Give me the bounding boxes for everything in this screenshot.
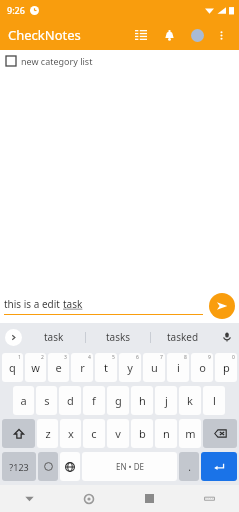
- staticText: s: [44, 393, 50, 408]
- staticText: l: [213, 393, 216, 408]
- staticText: this is a edit: [4, 297, 63, 311]
- button[interactable]: EN • DE: [82, 452, 177, 481]
- staticText: tasks: [106, 330, 131, 344]
- staticText: o: [199, 360, 206, 375]
- button[interactable]: Send: [209, 293, 235, 319]
- staticText: tasked: [167, 330, 199, 344]
- button[interactable]: c: [83, 419, 105, 448]
- button[interactable]: .: [179, 452, 199, 481]
- staticText: 7: [160, 354, 163, 361]
- staticText: x: [68, 426, 74, 441]
- staticText: n: [163, 426, 170, 441]
- staticText: 1: [18, 354, 21, 361]
- button[interactable]: tasked: [151, 323, 215, 351]
- staticText: t: [104, 360, 108, 375]
- staticText: a: [20, 393, 27, 408]
- button[interactable]: r: [71, 353, 93, 382]
- button[interactable]: v: [107, 419, 129, 448]
- staticText: d: [67, 393, 74, 408]
- staticText: h: [139, 393, 146, 408]
- button[interactable]: Expand toolbar: [5, 329, 22, 346]
- button[interactable]: Account: [185, 23, 209, 47]
- button[interactable]: n: [155, 419, 177, 448]
- button[interactable]: w: [25, 353, 46, 382]
- button[interactable]: Hide keyboard: [0, 485, 59, 512]
- staticText: g: [115, 393, 122, 408]
- button[interactable]: tasks: [86, 323, 150, 351]
- staticText: new category list: [21, 55, 93, 67]
- staticText: w: [31, 360, 40, 375]
- button[interactable]: t: [95, 353, 117, 382]
- button[interactable]: Emoji: [38, 452, 58, 481]
- button[interactable]: Recent apps: [119, 485, 179, 512]
- staticText: 6: [136, 354, 139, 361]
- button[interactable]: m: [179, 419, 201, 448]
- button[interactable]: Enter: [201, 452, 237, 481]
- staticText: f: [92, 393, 96, 408]
- staticText: EN • DE: [116, 461, 144, 472]
- staticText: 9: [208, 354, 211, 361]
- staticText: u: [151, 360, 158, 375]
- button[interactable]: z: [37, 419, 58, 448]
- button[interactable]: new category list: [0, 50, 239, 72]
- button[interactable]: Switch keyboard: [179, 485, 239, 512]
- button[interactable]: g: [107, 386, 129, 415]
- staticText: m: [185, 426, 196, 441]
- button[interactable]: Change language: [60, 452, 80, 481]
- staticText: z: [45, 426, 51, 441]
- button[interactable]: j: [155, 386, 177, 415]
- staticText: task: [44, 330, 64, 344]
- button[interactable]: u: [143, 353, 165, 382]
- button[interactable]: k: [179, 386, 201, 415]
- staticText: 0: [232, 354, 235, 361]
- staticText: c: [91, 426, 97, 441]
- button[interactable]: x: [60, 419, 81, 448]
- button[interactable]: h: [131, 386, 153, 415]
- staticText: j: [165, 393, 168, 408]
- staticText: r: [80, 360, 85, 375]
- staticText: .: [188, 460, 191, 474]
- button[interactable]: i: [167, 353, 189, 382]
- button[interactable]: More options: [211, 25, 231, 45]
- button[interactable]: p: [215, 353, 237, 382]
- staticText: ?123: [9, 461, 29, 473]
- button[interactable]: s: [36, 386, 57, 415]
- staticText: task: [63, 297, 83, 311]
- button[interactable]: Home: [59, 485, 119, 512]
- staticText: p: [223, 360, 230, 375]
- button[interactable]: Shift: [2, 419, 35, 448]
- button[interactable]: y: [119, 353, 141, 382]
- staticText: y: [127, 360, 133, 375]
- staticText: k: [187, 393, 193, 408]
- button[interactable]: l: [203, 386, 225, 415]
- staticText: b: [139, 426, 146, 441]
- button[interactable]: e: [48, 353, 69, 382]
- button[interactable]: b: [131, 419, 153, 448]
- staticText: e: [55, 360, 62, 375]
- button[interactable]: f: [83, 386, 105, 415]
- staticText: 2: [41, 354, 44, 361]
- staticText: v: [115, 426, 121, 441]
- button[interactable]: Lists: [129, 23, 153, 47]
- staticText: 8: [184, 354, 187, 361]
- staticText: 4: [88, 354, 91, 361]
- button[interactable]: ?123: [2, 452, 36, 481]
- button[interactable]: Voice input: [215, 323, 239, 351]
- button[interactable]: q: [2, 353, 23, 382]
- staticText: 5: [112, 354, 115, 361]
- staticText: 3: [64, 354, 67, 361]
- button[interactable]: d: [59, 386, 81, 415]
- staticText: CheckNotes: [8, 26, 81, 44]
- button[interactable]: Notifications: [157, 23, 181, 47]
- staticText: q: [9, 360, 16, 375]
- staticText: 9:26: [7, 4, 25, 16]
- staticText: i: [177, 360, 180, 375]
- button[interactable]: a: [13, 386, 34, 415]
- button[interactable]: Backspace: [203, 419, 237, 448]
- button[interactable]: task: [22, 323, 85, 351]
- button[interactable]: o: [191, 353, 213, 382]
